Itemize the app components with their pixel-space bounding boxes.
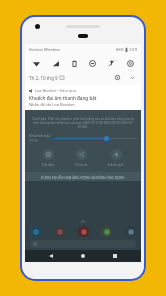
button[interactable]: Amplification slider [54, 135, 137, 141]
button[interactable]: Cài đặt [39, 148, 57, 168]
button[interactable]: Gmail [54, 226, 65, 237]
staticText: DỪNG KHUẾCH ĐẠI ÂM LƯỢNG VÀ ĐÓNG ỨNG DỤN… [41, 175, 125, 179]
button[interactable]: Home [77, 250, 89, 262]
staticText: Cảnh báo: Phát âm thanh ở mức âm lượng c… [30, 117, 136, 129]
button[interactable]: Camera [125, 226, 136, 237]
button[interactable]: Search [30, 240, 136, 248]
button[interactable]: Drive [78, 226, 89, 237]
button[interactable]: Recents [109, 250, 121, 262]
staticText: Khuếch đại âm thanh đang bật [29, 95, 97, 101]
button[interactable]: Back [45, 250, 57, 262]
staticText: Verizon Wireless [29, 47, 60, 52]
button[interactable]: Settings [113, 73, 122, 82]
staticText: Th 2, 10 thg 9 [29, 75, 58, 81]
button[interactable]: Battery saver [67, 56, 81, 70]
staticText: Loa Booster • hôm qua [35, 88, 76, 93]
button[interactable]: Do not disturb [85, 56, 99, 70]
staticText: 1:59 [129, 47, 137, 52]
button[interactable]: Chia sẻ [72, 148, 91, 168]
button[interactable]: Mobile data [48, 56, 62, 70]
button[interactable]: Expand [128, 73, 137, 82]
button[interactable]: Auto rotate [123, 56, 137, 70]
staticText: Cài đặt [42, 162, 54, 167]
button[interactable]: Đánh giá [105, 148, 127, 168]
staticText: Khuếch đại: [29, 133, 51, 138]
staticText: Đánh giá [108, 162, 124, 167]
button[interactable]: Wi-Fi [29, 56, 43, 70]
staticText: 19 % [29, 138, 38, 143]
button[interactable]: Loa Booster • hôm qua [25, 85, 141, 110]
staticText: Nhấn để tắt Loa Booster [29, 102, 75, 107]
staticText: 66% [116, 47, 124, 52]
button[interactable]: Chrome [101, 226, 112, 237]
button[interactable]: DỪNG KHUẾCH ĐẠI ÂM LƯỢNG VÀ ĐÓNG ỨNG DỤN… [25, 172, 141, 181]
staticText: Chia sẻ [75, 162, 88, 167]
button[interactable]: Contacts [30, 226, 41, 237]
button[interactable]: Flashlight [104, 56, 118, 70]
